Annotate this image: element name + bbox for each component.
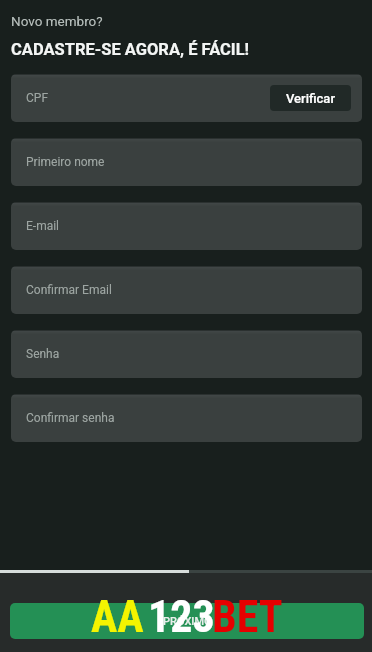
staticText: CADASTRE-SE AGORA, É FÁCIL! <box>11 40 250 59</box>
staticText: 123 <box>148 591 215 643</box>
button[interactable]: Verificar <box>270 85 351 111</box>
button[interactable]: Primeiro nome <box>11 138 362 186</box>
staticText: PRÓXIMO <box>163 615 212 628</box>
button[interactable]: Confirmar senha <box>11 394 362 442</box>
staticText: Verificar <box>286 91 335 106</box>
staticText: Confirmar Email <box>26 283 112 297</box>
button[interactable]: Senha <box>11 330 362 378</box>
staticText: Novo membro? <box>11 13 103 29</box>
staticText: BET <box>212 591 283 643</box>
staticText: CPF <box>26 91 49 105</box>
staticText: Senha <box>26 347 60 361</box>
button[interactable]: Confirmar Email <box>11 266 362 314</box>
staticText: AA <box>91 591 144 643</box>
button[interactable]: E-mail <box>11 202 362 250</box>
staticText: Confirmar senha <box>26 411 115 425</box>
staticText: E-mail <box>26 219 60 233</box>
button[interactable]: CPF <box>11 74 362 122</box>
staticText: Primeiro nome <box>26 155 105 169</box>
button[interactable]: PRÓXIMO <box>10 603 364 639</box>
